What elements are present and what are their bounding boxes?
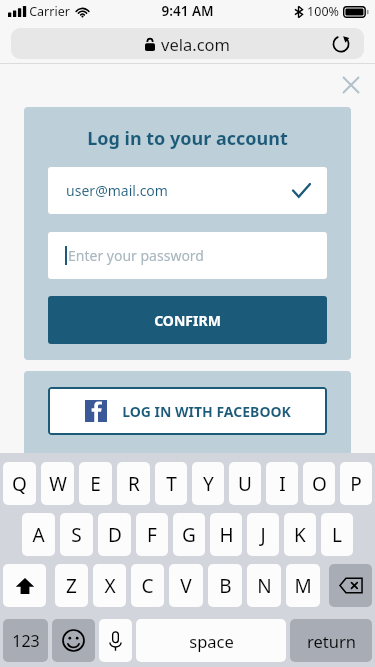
- button[interactable]: Emoji keyboard: [52, 619, 95, 662]
- staticText: D: [108, 522, 122, 548]
- staticText: Carrier: [29, 3, 70, 20]
- staticText: return: [307, 630, 356, 652]
- button[interactable]: E: [79, 462, 112, 505]
- button[interactable]: Reload page: [328, 31, 354, 57]
- button[interactable]: U: [229, 462, 261, 505]
- button[interactable]: Shift: [3, 564, 46, 607]
- staticText: J: [260, 522, 266, 548]
- button[interactable]: H: [210, 513, 242, 556]
- button[interactable]: M: [286, 564, 320, 607]
- staticText: W: [49, 471, 67, 497]
- button[interactable]: T: [155, 462, 187, 505]
- button[interactable]: LOG IN WITH FACEBOOK: [48, 387, 327, 435]
- staticText: T: [166, 471, 177, 497]
- button[interactable]: user@mail.com: [48, 167, 327, 214]
- button[interactable]: O: [303, 462, 335, 505]
- staticText: P: [350, 471, 362, 497]
- staticText: M: [294, 573, 312, 599]
- staticText: L: [332, 522, 342, 548]
- staticText: CONFIRM: [154, 311, 221, 330]
- button[interactable]: vela.com: [11, 28, 364, 59]
- staticText: N: [257, 573, 272, 599]
- staticText: S: [71, 522, 82, 548]
- button[interactable]: D: [98, 513, 131, 556]
- staticText: H: [219, 522, 234, 548]
- staticText: A: [32, 522, 45, 548]
- button[interactable]: B: [208, 564, 242, 607]
- button[interactable]: W: [41, 462, 74, 505]
- staticText: O: [312, 471, 327, 497]
- staticText: C: [141, 573, 154, 599]
- staticText: G: [182, 522, 196, 548]
- button[interactable]: R: [117, 462, 150, 505]
- button[interactable]: J: [247, 513, 279, 556]
- button[interactable]: C: [131, 564, 164, 607]
- button[interactable]: 123: [3, 619, 48, 662]
- staticText: B: [219, 573, 232, 599]
- staticText: space: [189, 630, 234, 652]
- button[interactable]: S: [60, 513, 93, 556]
- button[interactable]: CONFIRM: [48, 296, 327, 344]
- button[interactable]: I: [266, 462, 298, 505]
- button[interactable]: K: [284, 513, 316, 556]
- button[interactable]: space: [136, 619, 286, 662]
- staticText: K: [294, 522, 306, 548]
- staticText: U: [238, 471, 252, 497]
- button[interactable]: L: [321, 513, 353, 556]
- staticText: I: [279, 471, 286, 497]
- button[interactable]: Q: [3, 462, 36, 505]
- button[interactable]: Close: [338, 72, 364, 98]
- staticText: Y: [203, 471, 214, 497]
- button[interactable]: F: [136, 513, 168, 556]
- staticText: R: [128, 471, 140, 497]
- staticText: V: [180, 573, 192, 599]
- button[interactable]: Y: [192, 462, 224, 505]
- button[interactable]: V: [169, 564, 203, 607]
- button[interactable]: N: [247, 564, 281, 607]
- button[interactable]: Backspace: [329, 564, 372, 607]
- staticText: LOG IN WITH FACEBOOK: [122, 402, 291, 421]
- staticText: Z: [66, 573, 77, 599]
- staticText: Log in to your account: [87, 126, 288, 151]
- button[interactable]: A: [22, 513, 55, 556]
- button[interactable]: Z: [55, 564, 88, 607]
- staticText: 100%: [307, 3, 339, 20]
- staticText: E: [90, 471, 101, 497]
- staticText: X: [104, 573, 116, 599]
- staticText: vela.com: [161, 33, 230, 55]
- staticText: 123: [12, 630, 40, 652]
- staticText: user@mail.com: [66, 181, 168, 200]
- button[interactable]: Enter your password: [48, 232, 327, 279]
- button[interactable]: X: [93, 564, 126, 607]
- button[interactable]: G: [173, 513, 205, 556]
- button[interactable]: Dictation: [99, 619, 132, 662]
- staticText: Q: [12, 471, 27, 497]
- button[interactable]: P: [340, 462, 372, 505]
- staticText: Enter your password: [68, 246, 204, 265]
- staticText: F: [147, 522, 157, 548]
- staticText: 9:41 AM: [161, 2, 214, 20]
- button[interactable]: return: [290, 619, 372, 662]
